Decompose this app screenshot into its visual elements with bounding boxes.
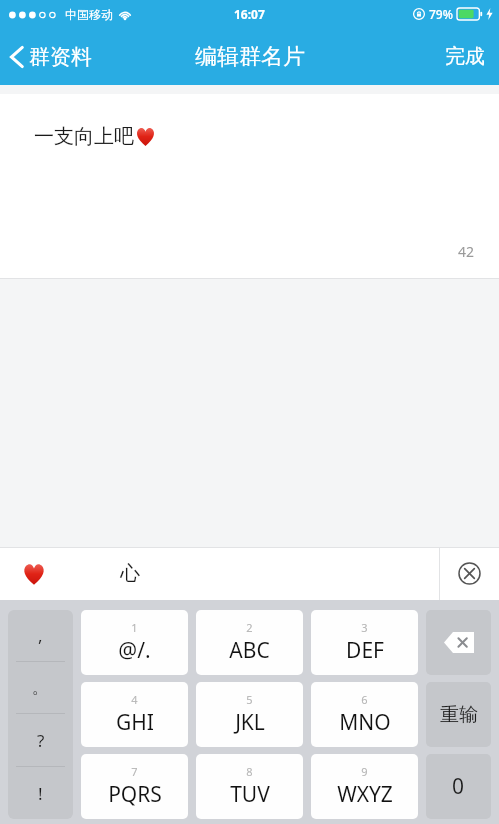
button[interactable]: 3 [311, 610, 418, 675]
button[interactable]: 群资料 [0, 28, 104, 85]
staticText: 16:07 [234, 6, 265, 22]
staticText: 心 [120, 561, 140, 586]
button[interactable]: ! [8, 767, 73, 819]
button[interactable]: 4 [81, 682, 188, 747]
staticText: 。 [32, 677, 49, 698]
staticText: 重输 [440, 703, 478, 727]
staticText: @/. [118, 636, 151, 665]
staticText: 79% [429, 6, 453, 22]
staticText: 1 [131, 620, 138, 635]
staticText: ? [37, 729, 45, 752]
staticText: WXYZ [337, 780, 393, 809]
button[interactable]: Delete [426, 610, 491, 675]
button[interactable]: 心 [112, 557, 148, 590]
staticText: 6 [361, 692, 368, 707]
staticText: JKL [235, 708, 265, 737]
button[interactable]: 重输 [426, 682, 491, 747]
button[interactable]: , [8, 610, 73, 661]
button[interactable]: Close keyboard [440, 547, 499, 600]
staticText: 一支向上吧 [34, 124, 134, 149]
button[interactable] [18, 558, 50, 590]
button[interactable]: 。 [8, 662, 73, 713]
button[interactable]: 1 [81, 610, 188, 675]
button[interactable]: 一支向上吧 [0, 94, 499, 279]
staticText: ! [38, 782, 43, 805]
button[interactable]: ? [8, 714, 73, 766]
button[interactable]: 0 [426, 754, 491, 819]
staticText: 3 [361, 620, 368, 635]
staticText: TUV [230, 780, 270, 809]
button[interactable]: 5 [196, 682, 303, 747]
button[interactable]: 6 [311, 682, 418, 747]
staticText: 群资料 [29, 44, 92, 70]
button[interactable]: 7 [81, 754, 188, 819]
staticText: DEF [346, 636, 384, 665]
button[interactable]: 完成 [431, 28, 499, 85]
button[interactable]: 9 [311, 754, 418, 819]
staticText: GHI [116, 708, 154, 737]
button[interactable]: 8 [196, 754, 303, 819]
staticText: 42 [458, 242, 475, 261]
staticText: 完成 [445, 44, 485, 69]
staticText: MNO [339, 708, 391, 737]
staticText: 4 [131, 692, 138, 707]
staticText: PQRS [108, 780, 162, 809]
staticText: 编辑群名片 [195, 43, 305, 71]
staticText: 中国移动 [65, 7, 113, 22]
staticText: 8 [246, 764, 253, 779]
staticText: 7 [131, 764, 138, 779]
staticText: 2 [246, 620, 253, 635]
staticText: 0 [452, 772, 465, 801]
staticText: ABC [229, 636, 270, 665]
button[interactable]: 2 [196, 610, 303, 675]
staticText: 5 [246, 692, 253, 707]
staticText: 9 [361, 764, 368, 779]
staticText: , [38, 624, 43, 647]
